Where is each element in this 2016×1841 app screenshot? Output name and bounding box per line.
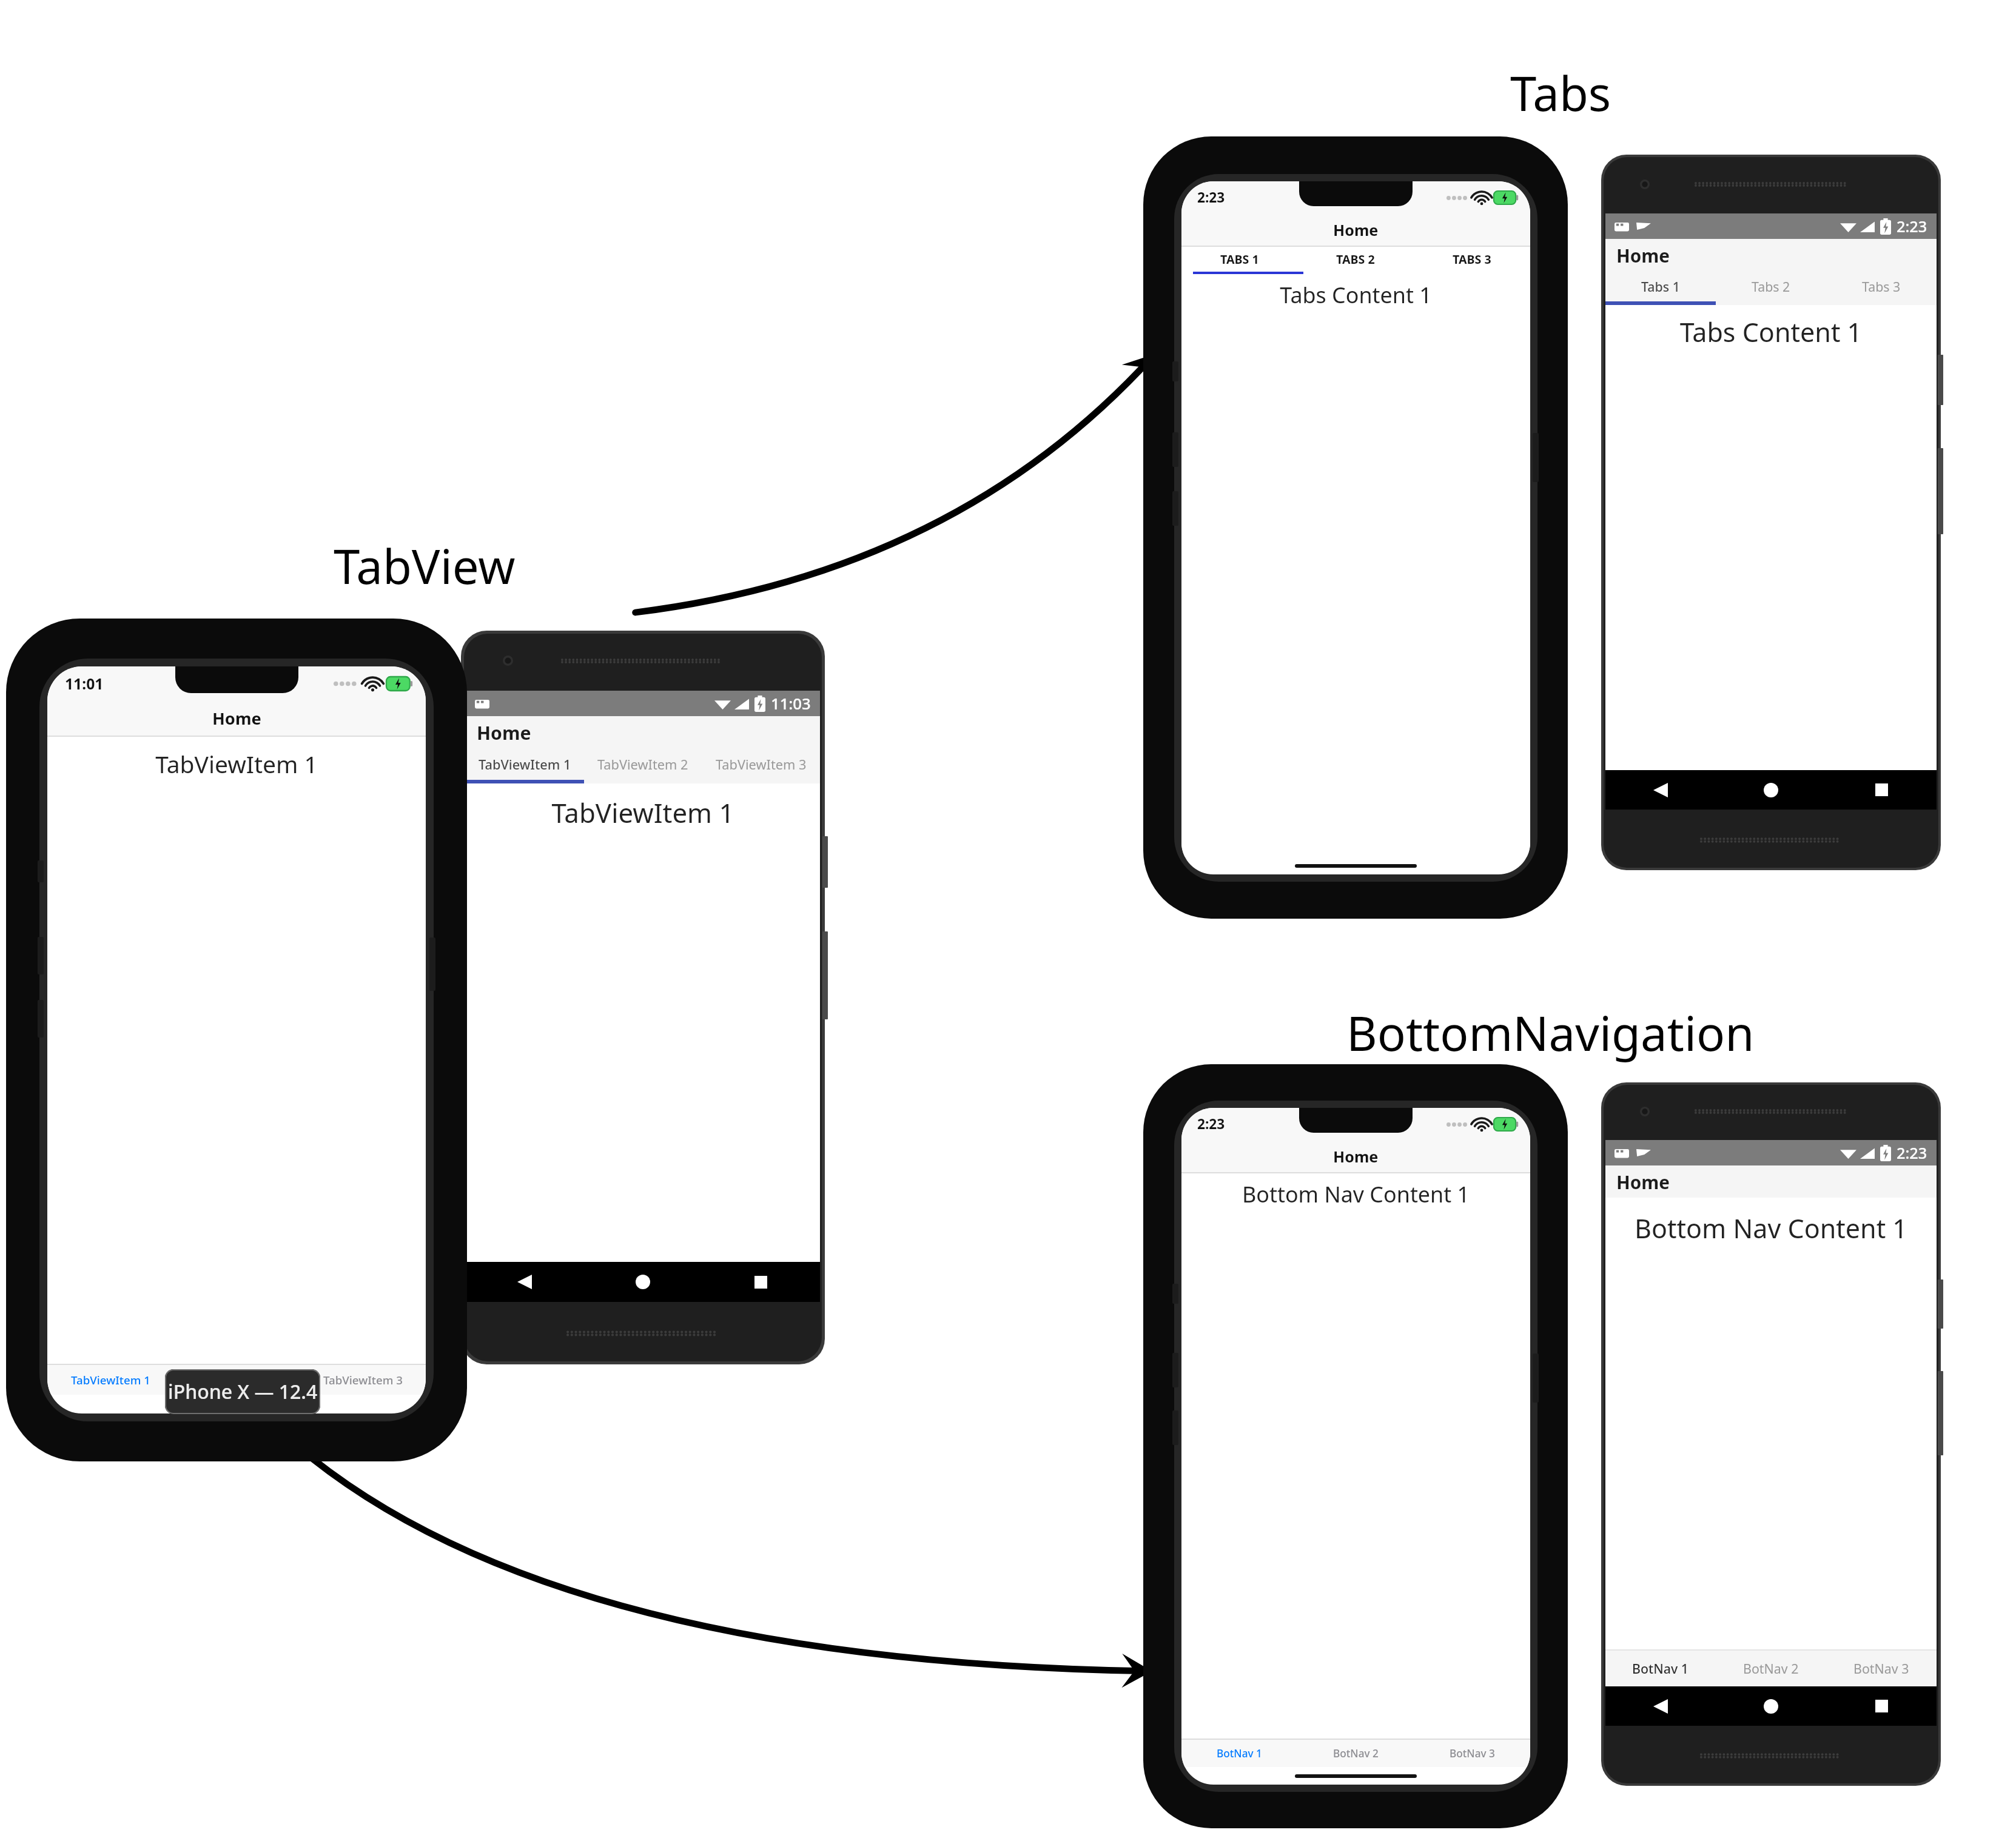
button[interactable]: Home xyxy=(1716,1686,1826,1726)
button[interactable]: Recents xyxy=(702,1262,820,1302)
staticText: Bottom Nav Content 1 xyxy=(1181,1179,1530,1209)
staticText: TabViewItem 2 xyxy=(197,1372,277,1387)
button[interactable]: BotNav 1 xyxy=(1181,1740,1297,1767)
staticText: Home xyxy=(212,707,261,729)
button[interactable]: Tabs 2 xyxy=(1716,271,1826,301)
button[interactable]: BotNav 3 xyxy=(1826,1651,1937,1686)
button[interactable]: TabViewItem 3 xyxy=(702,749,820,780)
button[interactable]: TABS 3 xyxy=(1414,247,1530,272)
button[interactable]: TABS 2 xyxy=(1297,247,1414,272)
button[interactable]: TabViewItem 2 xyxy=(583,749,702,780)
staticText: BotNav 2 xyxy=(1333,1746,1379,1760)
staticText: TabViewItem 1 xyxy=(71,1372,150,1387)
staticText: BotNav 1 xyxy=(1632,1660,1689,1677)
button[interactable]: TABS 1 xyxy=(1181,247,1297,272)
button[interactable]: Back xyxy=(1605,1686,1716,1726)
button[interactable]: TabViewItem 1 xyxy=(47,1365,173,1395)
staticText: Tabs Content 1 xyxy=(1605,314,1937,350)
staticText: BotNav 3 xyxy=(1853,1660,1909,1677)
staticText: TabView xyxy=(334,534,516,598)
button[interactable]: Tabs 3 xyxy=(1826,271,1937,301)
button[interactable]: Home xyxy=(1716,770,1826,810)
staticText: Tabs xyxy=(1510,61,1611,125)
staticText: Home xyxy=(1333,1146,1379,1167)
button[interactable]: TabViewItem 1 xyxy=(466,749,583,780)
staticText: Tabs 3 xyxy=(1862,278,1901,295)
button[interactable]: Recents xyxy=(1826,770,1937,810)
button[interactable]: Recents xyxy=(1826,1686,1937,1726)
staticText: TabViewItem 1 xyxy=(466,794,820,831)
button[interactable]: BotNav 2 xyxy=(1716,1651,1826,1686)
staticText: Home xyxy=(1616,243,1670,267)
staticText: TabViewItem 3 xyxy=(323,1372,403,1387)
staticText: Home xyxy=(1616,1170,1670,1194)
staticText: TabViewItem 1 xyxy=(479,756,571,774)
button[interactable]: BotNav 1 xyxy=(1605,1651,1716,1686)
button[interactable]: iPhone X — 12.4 xyxy=(165,1369,320,1414)
staticText: BottomNavigation xyxy=(1346,1001,1755,1065)
staticText: Home xyxy=(1333,220,1379,240)
staticText: 2:23 xyxy=(1897,216,1927,236)
staticText: Bottom Nav Content 1 xyxy=(1605,1210,1937,1246)
button[interactable]: Home xyxy=(583,1262,702,1302)
staticText: 2:23 xyxy=(1197,1115,1225,1133)
staticText: iPhone X — 12.4 xyxy=(168,1378,318,1405)
button[interactable]: Back xyxy=(466,1262,583,1302)
button[interactable]: Back xyxy=(1605,770,1716,810)
staticText: TabViewItem 3 xyxy=(716,756,807,774)
staticText: BotNav 2 xyxy=(1743,1660,1799,1677)
button[interactable]: BotNav 2 xyxy=(1297,1740,1414,1767)
button[interactable]: TabViewItem 3 xyxy=(300,1365,426,1395)
staticText: TabViewItem 1 xyxy=(47,748,426,780)
staticText: Tabs 2 xyxy=(1752,278,1790,295)
staticText: 11:01 xyxy=(65,674,104,694)
staticText: TabViewItem 2 xyxy=(597,756,688,774)
staticText: Tabs Content 1 xyxy=(1181,280,1530,310)
staticText: TABS 3 xyxy=(1453,251,1491,267)
staticText: TABS 2 xyxy=(1336,251,1375,267)
staticText: BotNav 1 xyxy=(1217,1746,1262,1760)
staticText: 2:23 xyxy=(1897,1142,1927,1163)
button[interactable]: TabViewItem 2 xyxy=(173,1365,300,1395)
staticText: Home xyxy=(477,720,531,745)
staticText: Tabs 1 xyxy=(1641,278,1680,295)
staticText: TABS 1 xyxy=(1220,251,1259,267)
staticText: 2:23 xyxy=(1197,188,1225,207)
staticText: 11:03 xyxy=(771,693,811,714)
button[interactable]: BotNav 3 xyxy=(1414,1740,1530,1767)
staticText: BotNav 3 xyxy=(1450,1746,1495,1760)
button[interactable]: Tabs 1 xyxy=(1605,271,1716,301)
